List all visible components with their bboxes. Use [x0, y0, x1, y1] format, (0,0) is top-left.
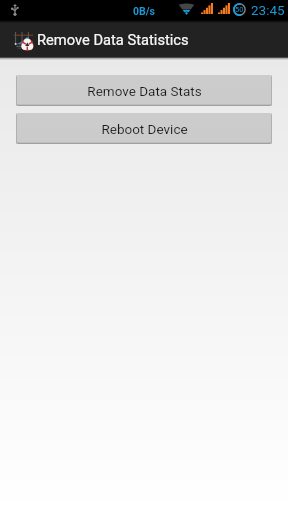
- staticText: 23:45: [251, 2, 285, 18]
- button[interactable]: App title: [0, 20, 288, 57]
- staticText: 0B/s: [133, 5, 156, 17]
- button[interactable]: Remove Data Stats: [16, 75, 272, 106]
- button[interactable]: Reboot Device: [16, 113, 272, 144]
- staticText: Reboot Device: [101, 121, 188, 137]
- staticText: Remove Data Statistics: [37, 31, 189, 48]
- staticText: Remove Data Stats: [87, 83, 202, 99]
- staticText: 50: [235, 5, 244, 14]
